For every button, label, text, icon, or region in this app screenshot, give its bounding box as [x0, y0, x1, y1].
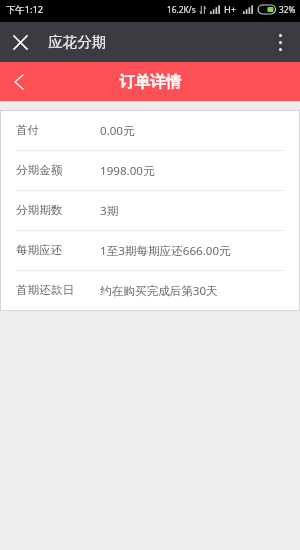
staticText: 首期还款日	[16, 283, 74, 298]
staticText: 1至3期每期应还666.00元	[100, 243, 231, 259]
button[interactable]: 分期期数	[1, 191, 299, 230]
staticText: 16.2K/s	[167, 4, 196, 15]
button[interactable]: More options	[260, 22, 300, 62]
staticText: 分期期数	[16, 203, 63, 218]
staticText: 订单详情	[119, 72, 182, 92]
staticText: 分期金额	[16, 163, 63, 178]
staticText: 下午1:12	[6, 3, 44, 16]
staticText: 约在购买完成后第30天	[100, 283, 218, 299]
staticText: 32%	[279, 4, 296, 15]
staticText: H+	[224, 3, 237, 16]
staticText: 3期	[100, 203, 119, 219]
button[interactable]: Close	[0, 22, 40, 62]
staticText: 每期应还	[16, 243, 63, 258]
staticText: 1998.00元	[100, 163, 155, 179]
button[interactable]: 分期金额	[1, 151, 299, 190]
staticText: 0.00元	[100, 123, 135, 139]
staticText: 首付	[16, 123, 40, 138]
button[interactable]: Back	[0, 63, 38, 101]
staticText: 应花分期	[48, 33, 107, 51]
button[interactable]: 每期应还	[1, 231, 299, 270]
button[interactable]: 首期还款日	[1, 271, 299, 310]
button[interactable]: 首付	[1, 111, 299, 150]
